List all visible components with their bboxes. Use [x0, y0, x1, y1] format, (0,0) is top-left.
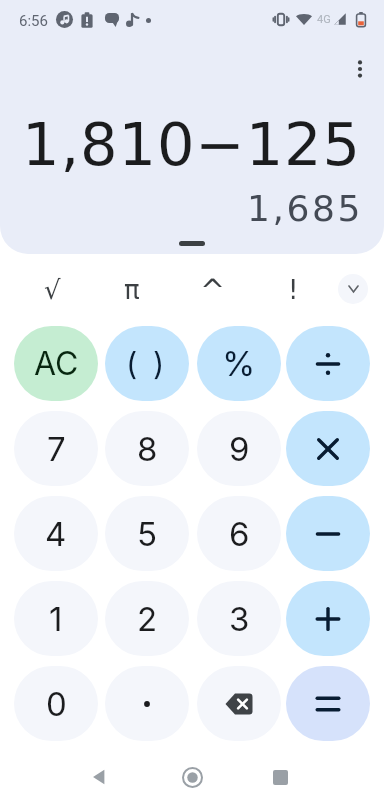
staticText: ! — [288, 275, 299, 305]
button[interactable]: ( ) — [105, 326, 189, 401]
button[interactable]: 0 — [14, 666, 98, 741]
button[interactable]: 6 — [197, 496, 281, 571]
staticText: AC — [34, 344, 79, 383]
button[interactable]: π — [104, 262, 160, 318]
button[interactable]: Expand functions — [338, 274, 368, 304]
button[interactable]: √ — [24, 262, 80, 318]
button[interactable]: Drag handle — [179, 241, 205, 246]
button[interactable]: Minus — [286, 496, 370, 571]
staticText: 1,685 — [0, 188, 363, 230]
staticText: 4 — [45, 514, 67, 554]
button[interactable]: 9 — [197, 411, 281, 486]
staticText: 5 — [137, 514, 158, 554]
button[interactable]: 2 — [105, 581, 189, 656]
staticText: % — [222, 343, 256, 384]
staticText: 6:56 — [19, 12, 48, 30]
button[interactable]: Home — [168, 753, 216, 801]
button[interactable]: Divide — [286, 326, 370, 401]
staticText: 8 — [137, 429, 158, 469]
staticText: 2 — [137, 599, 158, 639]
staticText: π — [124, 275, 140, 305]
button[interactable]: ^ — [185, 262, 241, 318]
button[interactable]: Plus — [286, 581, 370, 656]
button[interactable]: Backspace — [197, 666, 281, 741]
button[interactable]: Equals — [286, 666, 370, 741]
button[interactable]: % — [197, 326, 281, 401]
button[interactable]: More options — [336, 45, 384, 93]
staticText: 7 — [47, 429, 66, 469]
button[interactable]: Back — [74, 753, 122, 801]
button[interactable]: 8 — [105, 411, 189, 486]
staticText: 6 — [229, 514, 250, 554]
button[interactable]: Decimal point — [105, 666, 189, 741]
button[interactable]: ! — [265, 262, 321, 318]
button[interactable]: Multiply — [286, 411, 370, 486]
button[interactable]: 1 — [14, 581, 98, 656]
staticText: 1 — [49, 599, 63, 639]
staticText: ( ) — [126, 345, 168, 383]
button[interactable]: 4 — [14, 496, 98, 571]
button[interactable]: AC — [14, 326, 98, 401]
staticText: 0 — [46, 684, 67, 724]
staticText: 9 — [229, 429, 250, 469]
button[interactable]: 7 — [14, 411, 98, 486]
button[interactable]: 3 — [197, 581, 281, 656]
staticText: 4G — [317, 13, 331, 26]
staticText: 1,810−125 — [0, 110, 361, 179]
staticText: 3 — [229, 599, 250, 639]
button[interactable]: Recent apps — [256, 753, 304, 801]
button[interactable]: 5 — [105, 496, 189, 571]
staticText: ^ — [200, 273, 226, 308]
staticText: √ — [44, 275, 61, 305]
